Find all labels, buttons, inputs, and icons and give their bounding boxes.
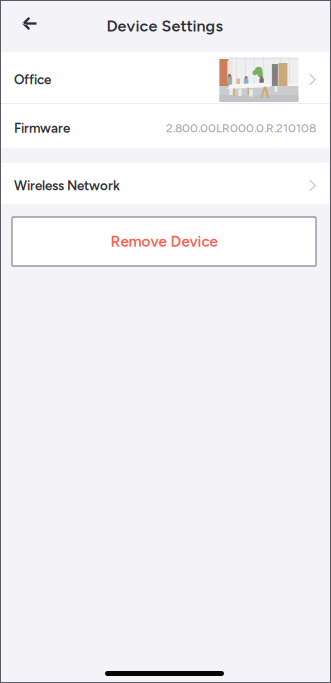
button[interactable]: Wireless Network [0, 163, 329, 204]
staticText: Firmware [14, 120, 70, 136]
button[interactable]: Back [7, 1, 51, 45]
button[interactable]: Remove Device [12, 217, 316, 266]
staticText: Office [14, 71, 51, 87]
staticText: 2.800.00LR000.0.R.210108 [166, 121, 316, 135]
button[interactable]: Office [0, 52, 329, 103]
staticText: Wireless Network [14, 177, 120, 193]
staticText: Remove Device [110, 232, 217, 251]
staticText: Device Settings [106, 16, 222, 36]
